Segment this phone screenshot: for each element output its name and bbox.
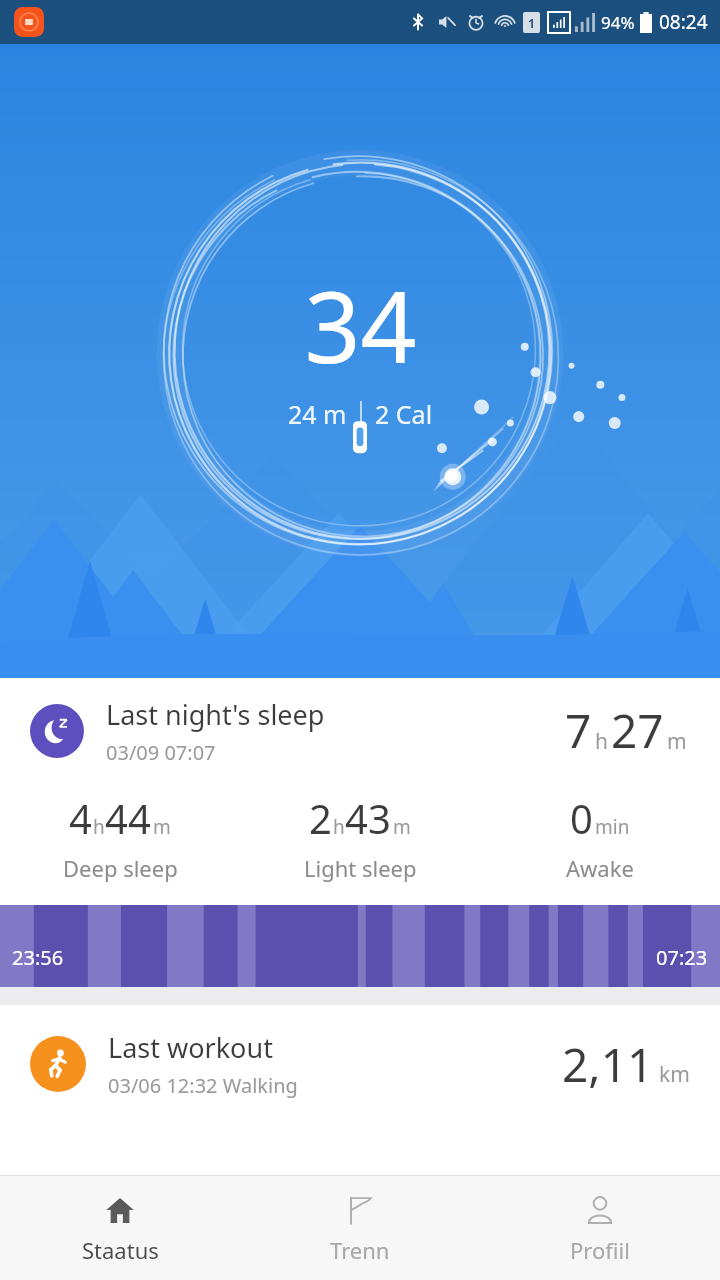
staticText: km [659,1060,690,1089]
staticText: Awake [566,853,634,883]
staticText: 0 [570,791,593,845]
staticText: m [153,814,171,840]
staticText: 2 [309,791,332,845]
button[interactable]: 0 [480,791,720,883]
staticText: h [93,814,105,840]
button[interactable]: Last workout [0,1005,720,1123]
staticText: 27 [611,699,664,762]
staticText: 03/09 07:07 [106,739,216,766]
staticText: Trenn [330,1235,390,1265]
staticText: Last night's sleep [106,696,325,733]
staticText: m [667,727,687,756]
button[interactable]: 34 [0,44,720,678]
staticText: 43 [345,791,391,845]
button[interactable]: 4 [0,791,240,883]
staticText: 23:56 [12,944,64,971]
staticText: 44 [105,791,151,845]
staticText: m [393,814,411,840]
staticText: Staatus [82,1235,159,1265]
staticText: 03/06 12:32 Walking [108,1072,298,1099]
staticText: min [595,814,630,840]
staticText: 2 Cal [375,397,433,431]
button[interactable]: 23:56 [0,905,720,987]
staticText: Profiil [570,1235,630,1265]
staticText: 24 m [288,397,347,431]
button[interactable]: Trenn [240,1176,480,1280]
staticText: 34 [304,258,417,391]
staticText: 1 [528,15,535,31]
staticText: 94% [601,11,635,34]
staticText: 08:24 [659,9,708,35]
button[interactable]: Profiil [480,1176,720,1280]
staticText: 4 [69,791,92,845]
staticText: Last workout [108,1029,273,1066]
staticText: 2,11 [562,1033,654,1096]
button[interactable]: 2 [240,791,480,883]
staticText: Light sleep [304,853,417,883]
staticText: h [595,727,608,756]
staticText: 7 [565,699,592,762]
staticText: Deep sleep [63,853,178,883]
button[interactable]: Last night's sleep [0,678,720,987]
staticText: h [333,814,345,840]
staticText: 07:23 [656,944,708,971]
button[interactable]: Staatus [0,1176,240,1280]
